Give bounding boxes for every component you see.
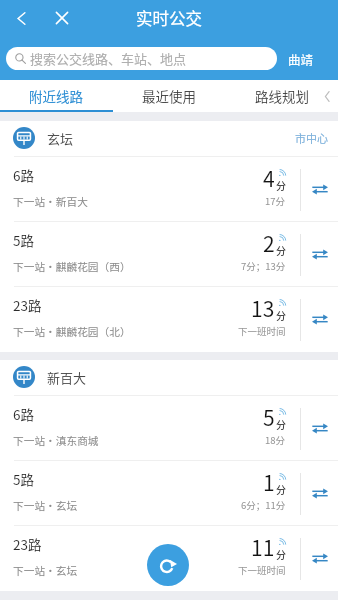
staticText: 下一站·玄坛	[13, 563, 78, 578]
staticText: 下一站·玄坛	[13, 498, 78, 513]
staticText: 最近使用	[142, 86, 196, 106]
button[interactable]: 6路	[0, 157, 338, 222]
staticText: 搜索公交线路、车站、地点	[30, 49, 187, 68]
button[interactable]: 23路	[0, 287, 338, 352]
staticText: 23路	[13, 534, 42, 554]
staticText: 玄坛	[47, 129, 74, 148]
staticText: 新百大	[47, 368, 87, 387]
staticText: 分	[276, 482, 286, 496]
staticText: 曲靖	[288, 50, 314, 68]
staticText: 分	[276, 308, 286, 322]
button[interactable]: 5路	[0, 461, 338, 526]
button[interactable]: 附近线路	[0, 80, 112, 112]
staticText: 下一站·麒麟花园（北）	[13, 324, 131, 339]
staticText: 下一站·滇东商城	[13, 433, 99, 448]
staticText: 2	[263, 228, 275, 258]
button[interactable]: 路线规划	[225, 80, 338, 112]
staticText: 6分；11分	[241, 498, 286, 512]
staticText: 市中心	[295, 130, 328, 146]
button[interactable]: 最近使用	[112, 80, 225, 112]
button[interactable]: 换向	[301, 222, 338, 287]
staticText: 5路	[13, 469, 34, 489]
staticText: 附近线路	[29, 86, 83, 106]
button[interactable]: 搜索公交线路、车站、地点	[6, 47, 277, 70]
staticText: 18分	[265, 433, 286, 447]
staticText: 23路	[13, 295, 42, 315]
button[interactable]: 换向	[301, 396, 338, 461]
staticText: 实时公交	[136, 6, 202, 30]
staticText: 路线规划	[255, 86, 309, 106]
staticText: 7分；13分	[241, 259, 286, 273]
button[interactable]: 换向	[301, 157, 338, 222]
staticText: 分	[276, 178, 286, 192]
staticText: 下一班时间	[238, 563, 286, 577]
staticText: 5路	[13, 230, 34, 250]
button[interactable]: 5路	[0, 222, 338, 287]
staticText: 6路	[13, 165, 34, 185]
staticText: 4	[263, 163, 275, 193]
staticText: 1	[263, 467, 275, 497]
staticText: 分	[276, 417, 286, 431]
button[interactable]: 换向	[301, 287, 338, 352]
button[interactable]: 换向	[301, 526, 338, 591]
staticText: 6路	[13, 404, 34, 424]
button[interactable]: 23路	[0, 526, 338, 591]
button[interactable]: 关闭	[46, 2, 78, 34]
button[interactable]: 换向	[301, 461, 338, 526]
staticText: 17分	[265, 194, 286, 208]
button[interactable]: 曲靖	[286, 46, 316, 72]
button[interactable]: 6路	[0, 396, 338, 461]
button[interactable]: 新百大	[0, 360, 338, 396]
staticText: 下一站·新百大	[13, 194, 88, 209]
staticText: 13	[251, 293, 275, 323]
button[interactable]: 玄坛	[0, 121, 338, 157]
staticText: 分	[276, 547, 286, 561]
button[interactable]: 更多	[316, 80, 338, 112]
button[interactable]: 返回	[5, 2, 37, 34]
staticText: 下一站·麒麟花园（西）	[13, 259, 131, 274]
button[interactable]: 刷新	[147, 544, 189, 586]
staticText: 下一班时间	[238, 324, 286, 338]
staticText: 分	[276, 243, 286, 257]
staticText: 5	[263, 402, 275, 432]
staticText: 11	[251, 532, 275, 562]
